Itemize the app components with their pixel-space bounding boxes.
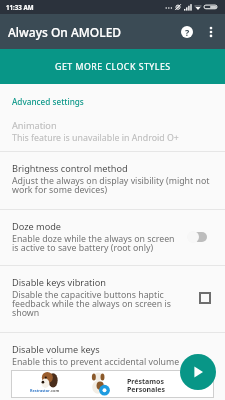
staticText: Disable volume keys <box>12 343 100 356</box>
staticText: This feature is unavailable in Android O… <box>12 132 179 144</box>
staticText: ? <box>185 26 190 38</box>
staticText: Disable the capacitive buttons haptic fe… <box>12 289 189 319</box>
button[interactable]: Doze mode <box>0 210 225 265</box>
button[interactable]: More options <box>200 21 222 43</box>
button[interactable]: Disable keys vibration checkbox <box>195 288 217 308</box>
button[interactable]: Toggle doze mode <box>187 227 217 247</box>
staticText: Restrastar <box>30 388 50 393</box>
staticText: Doze mode <box>12 220 62 233</box>
button[interactable]: Brightness control method <box>0 152 225 209</box>
staticText: GET MORE CLOCK STYLES <box>55 61 171 73</box>
button[interactable]: Disable volume keys <box>0 333 225 379</box>
button[interactable]: Disable keys vibration <box>0 266 225 332</box>
staticText: Advanced settings <box>12 96 84 107</box>
staticText: Adjust the always on display visibility … <box>12 175 217 196</box>
staticText: Disable keys vibration <box>12 276 106 289</box>
button[interactable]: Advertisement <box>11 370 214 398</box>
staticText: Always On AMOLED <box>8 24 122 40</box>
staticText: Enable doze while the always on screen i… <box>12 233 181 254</box>
staticText: Personales <box>127 385 166 395</box>
staticText: .com <box>50 388 60 393</box>
staticText: Enable this to prevent accidental volume <box>12 356 180 368</box>
staticText: 11:33 AM <box>6 3 34 11</box>
staticText: Préstamos <box>127 377 164 387</box>
staticText: Animation <box>12 119 57 132</box>
button[interactable]: Help <box>174 19 200 45</box>
button[interactable]: Play preview <box>180 354 216 390</box>
button[interactable]: GET MORE CLOCK STYLES <box>0 49 225 84</box>
button[interactable]: Animation <box>0 109 225 151</box>
staticText: Brightness control method <box>12 162 128 175</box>
